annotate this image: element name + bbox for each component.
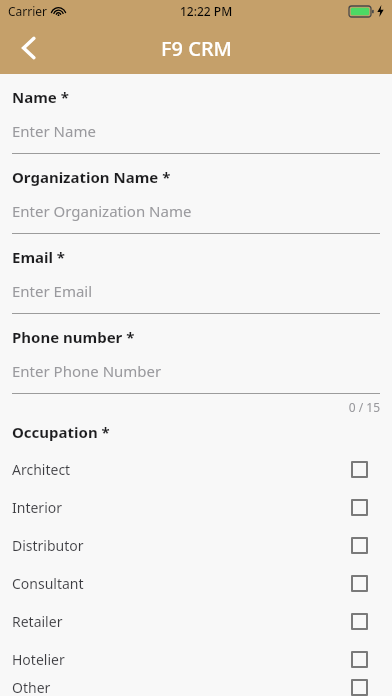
staticText: 12:22 PM [180,3,233,19]
staticText: Phone number * [12,327,135,347]
button[interactable]: Email * [0,234,392,314]
staticText: Occupation * [12,422,110,442]
staticText: Organization Name * [12,167,171,187]
staticText: Name * [12,87,69,107]
staticText: Enter Phone Number [12,361,162,381]
button[interactable]: Retailer [0,602,392,640]
staticText: 0 / 15 [0,399,380,415]
staticText: Retailer [12,612,63,631]
button[interactable]: Consultant [0,564,392,602]
staticText: Distributor [12,536,84,555]
button[interactable]: Other [0,678,392,696]
staticText: Architect [12,460,71,479]
button[interactable]: Hotelier [0,640,392,678]
staticText: Interior [12,498,62,517]
staticText: Other [12,678,51,696]
button[interactable]: Distributor [0,526,392,564]
button[interactable]: Architect [0,450,392,488]
button[interactable]: Organization Name * [0,154,392,234]
staticText: Hotelier [12,650,65,669]
staticText: Consultant [12,574,84,593]
staticText: Carrier [8,3,48,19]
staticText: Enter Email [12,281,93,301]
button[interactable]: Back [6,26,50,70]
staticText: Enter Organization Name [12,201,192,221]
staticText: Email * [12,247,65,267]
staticText: F9 CRM [161,35,232,62]
button[interactable]: Name * [0,74,392,154]
staticText: Enter Name [12,121,96,141]
button[interactable]: Interior [0,488,392,526]
button[interactable]: Phone number * [0,314,392,394]
